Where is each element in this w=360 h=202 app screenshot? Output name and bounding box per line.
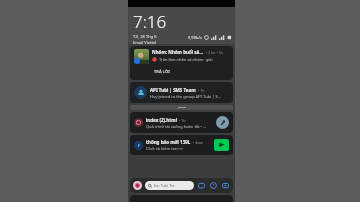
button[interactable]: Expand notifications — [130, 105, 233, 110]
button[interactable]: API Tubi | SMS Team — [130, 82, 233, 103]
staticText: Em Tubi Tet — [154, 183, 175, 188]
button[interactable]: Files — [197, 181, 206, 190]
staticText: index (2).html — [146, 117, 177, 123]
button[interactable]: TRẢ LỜI — [152, 68, 172, 75]
button[interactable]: Nhóm: Nhóm buổi sá... — [130, 46, 233, 80]
staticText: 0,9Kb/s — [188, 35, 202, 40]
staticText: Quá trình tải xuống hoàn tất • ... — [146, 124, 207, 129]
button[interactable]: Assistant — [133, 181, 142, 190]
staticText: • 1h — [198, 88, 205, 93]
button[interactable]: Em Tubi Tet — [145, 181, 194, 190]
staticText: API Tubi | SMS Team — [150, 87, 196, 93]
staticText: f — [138, 143, 140, 148]
staticText: T.5, 26 Thg 6 — [133, 34, 157, 39]
button[interactable]: Clock — [209, 181, 218, 190]
button[interactable]: Open file — [216, 116, 229, 129]
staticText: • 4ww — [193, 140, 203, 145]
staticText: • 1tr — [179, 118, 186, 123]
button[interactable]: index (2).html — [130, 112, 233, 133]
staticText: thông báo mới 139L — [146, 139, 191, 145]
button[interactable]: Play — [221, 181, 230, 190]
staticText: Email Viettel — [133, 40, 157, 44]
button[interactable]: f — [130, 135, 233, 155]
staticText: Trím làm nhân sá nhóm giỏi — [159, 57, 213, 62]
button[interactable]: Open notification image — [214, 139, 229, 151]
staticText: • 2 tin • 1h — [206, 50, 223, 55]
staticText: Huy joined to the group API Tubi | S... — [150, 94, 221, 99]
staticText: TRẢ LỜI — [154, 69, 170, 74]
staticText: Nhóm: Nhóm buổi sá... — [152, 49, 204, 55]
staticText: 7:16 — [133, 10, 167, 33]
staticText: Click và kiểm tra>>> — [146, 146, 184, 151]
